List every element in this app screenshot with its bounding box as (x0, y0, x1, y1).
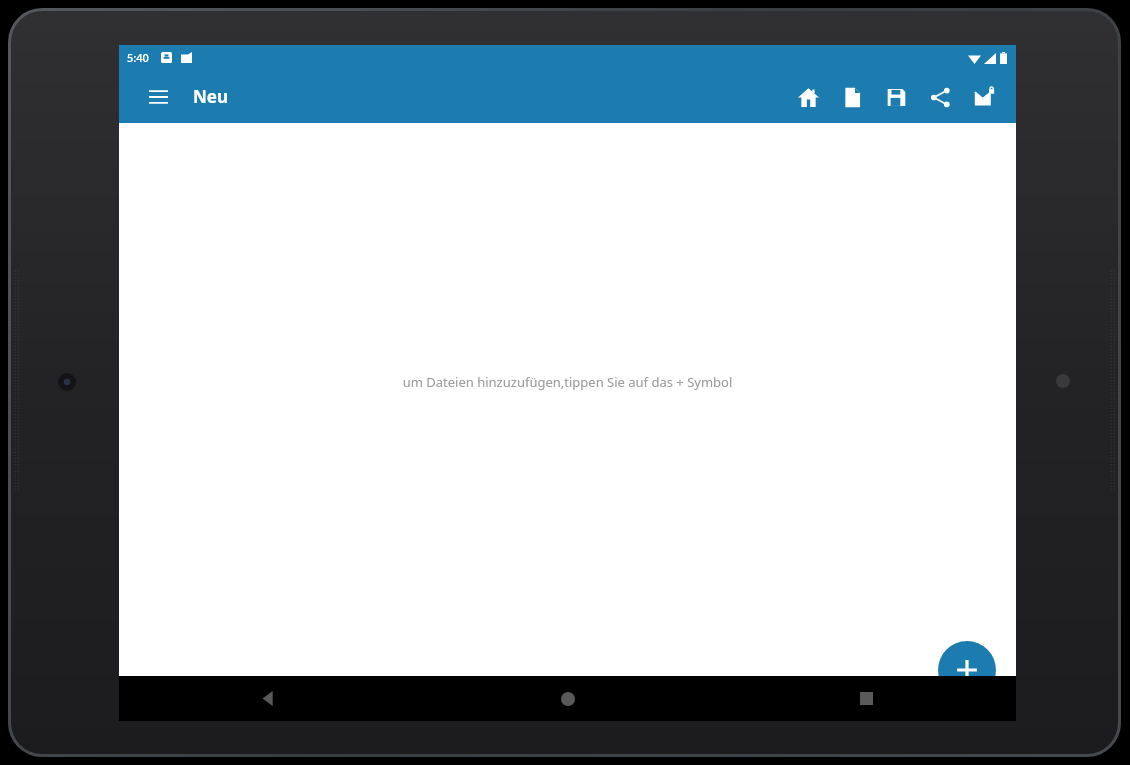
button[interactable]: Startseite (790, 79, 826, 115)
button[interactable]: E-Mail (966, 79, 1002, 115)
button[interactable]: Letzte Apps (717, 676, 1016, 721)
button[interactable]: Menü (141, 80, 175, 114)
staticText: um Dateien hinzuzufügen,tippen Sie auf d… (119, 373, 1016, 391)
button[interactable]: Teilen (922, 79, 958, 115)
button[interactable]: Hinzufügen (938, 641, 996, 699)
staticText: 5:40 (127, 50, 149, 65)
staticText: Neu (193, 85, 229, 108)
button[interactable]: Neue Datei (834, 79, 870, 115)
button[interactable]: Startseite (418, 676, 717, 721)
button[interactable]: Zurück (119, 676, 418, 721)
button[interactable]: Speichern (878, 79, 914, 115)
